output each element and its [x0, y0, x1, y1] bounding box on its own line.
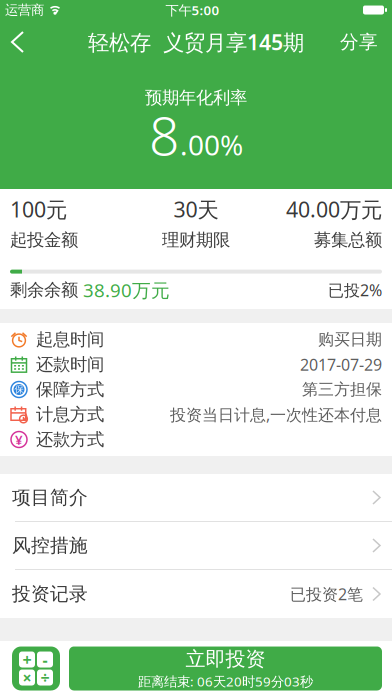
staticText: 100元 — [10, 195, 67, 223]
staticText: + — [22, 649, 31, 670]
staticText: 起息时间 — [36, 329, 104, 350]
staticText: 38.90万元 — [83, 278, 170, 302]
staticText: 计息方式 — [36, 404, 104, 425]
staticText: 项目简介 — [12, 486, 88, 509]
staticText: 还款时间 — [36, 354, 104, 375]
staticText: 已投资2笔 — [290, 583, 363, 605]
button[interactable]: 项目简介 — [0, 474, 392, 522]
button[interactable]: 分享 — [340, 18, 392, 65]
staticText: 第三方担保 — [302, 380, 382, 399]
staticText: 30天 — [173, 195, 218, 223]
staticText: 运营商 — [5, 2, 44, 18]
staticText: 立即投资 — [185, 647, 265, 671]
staticText: 轻松存 义贸月享145期 — [88, 28, 304, 56]
button[interactable]: 收益计算器 — [12, 646, 60, 690]
staticText: 投资当日计息,一次性还本付息 — [170, 404, 382, 425]
staticText: 剩余余额 — [10, 279, 83, 301]
staticText: 募集总额 — [314, 229, 382, 251]
staticText: ¥ — [15, 431, 23, 448]
staticText: 购买日期 — [318, 330, 382, 349]
staticText: 还款方式 — [36, 429, 104, 450]
staticText: × — [22, 667, 31, 688]
staticText: 预期年化利率 — [145, 87, 247, 108]
staticText: 8 — [149, 99, 179, 170]
staticText: 下午5:00 — [165, 1, 219, 19]
staticText: 投资记录 — [12, 582, 88, 605]
staticText: 风控措施 — [12, 534, 88, 557]
staticText: 已投2% — [328, 279, 382, 301]
staticText: 理财期限 — [162, 229, 230, 251]
button[interactable]: 返回 — [0, 20, 23, 64]
button[interactable]: 立即投资 — [69, 646, 382, 690]
staticText: .00% — [180, 126, 243, 163]
staticText: - — [42, 649, 47, 670]
staticText: 2017-07-29 — [300, 354, 382, 375]
staticText: 分享 — [340, 30, 378, 53]
staticText: 40.00万元 — [286, 195, 382, 223]
staticText: ÷ — [40, 667, 49, 688]
staticText: 起投金额 — [10, 229, 78, 251]
button[interactable]: 投资记录 — [0, 570, 392, 618]
staticText: 距离结束: 06天20时59分03秒 — [138, 672, 313, 690]
staticText: 保 — [14, 384, 23, 395]
button[interactable]: 风控措施 — [0, 522, 392, 570]
staticText: 保障方式 — [36, 379, 104, 400]
